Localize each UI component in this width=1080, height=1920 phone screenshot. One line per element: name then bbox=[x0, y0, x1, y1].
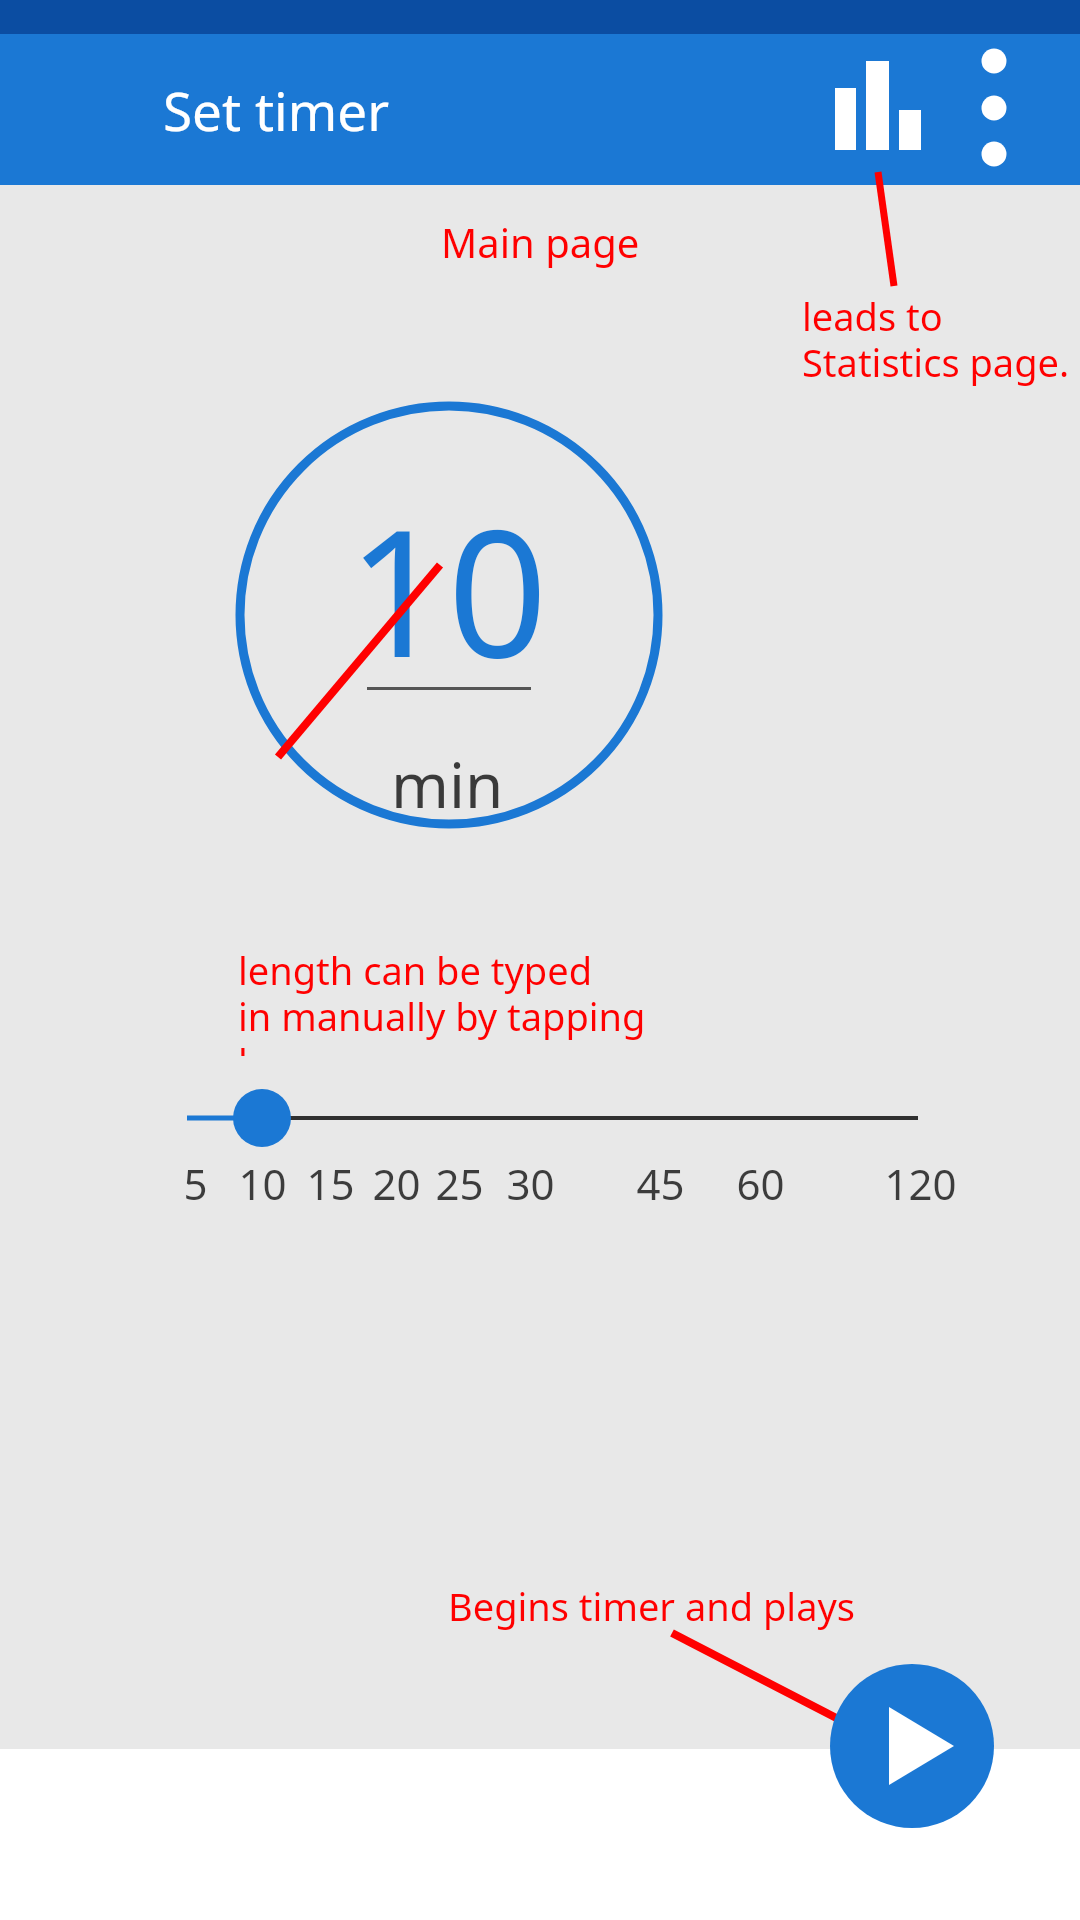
button[interactable]: More options bbox=[946, 39, 1042, 183]
button[interactable]: Statistics bbox=[805, 39, 949, 183]
staticText: 120 bbox=[884, 1155, 957, 1212]
staticText: leads to Statistics page. bbox=[802, 290, 1070, 388]
staticText: Set timer bbox=[163, 74, 390, 146]
staticText: 10 bbox=[347, 470, 548, 692]
staticText: 15 bbox=[306, 1155, 355, 1212]
staticText: 60 bbox=[736, 1155, 785, 1212]
staticText: min bbox=[391, 742, 504, 826]
button[interactable]: 10 bbox=[297, 470, 597, 692]
button[interactable]: Start timer bbox=[830, 1664, 994, 1828]
staticText: 5 bbox=[183, 1155, 208, 1212]
button[interactable]: Duration slider bbox=[150, 1070, 940, 1166]
staticText: Begins timer and plays playlist bbox=[448, 1580, 968, 1638]
staticText: Main page bbox=[441, 215, 640, 269]
staticText: 25 bbox=[435, 1155, 484, 1212]
staticText: 10 bbox=[238, 1155, 287, 1212]
staticText: 45 bbox=[636, 1155, 685, 1212]
staticText: 30 bbox=[506, 1155, 555, 1212]
staticText: 20 bbox=[372, 1155, 421, 1212]
staticText: length can be typed in manually by tappi… bbox=[238, 944, 668, 1056]
